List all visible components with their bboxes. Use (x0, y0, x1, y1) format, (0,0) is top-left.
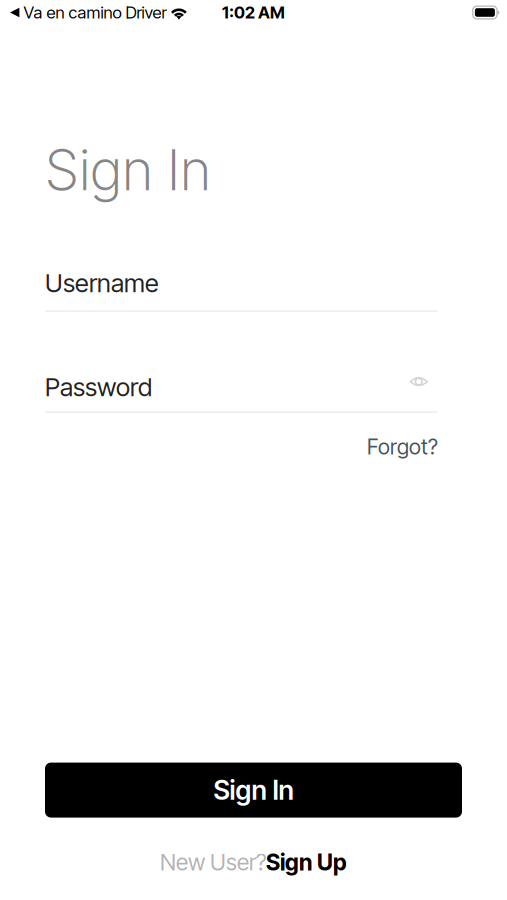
staticText: New User? (160, 849, 266, 876)
button[interactable]: Password (45, 372, 152, 402)
staticText: Username (45, 268, 159, 298)
button[interactable]: New User? (160, 849, 347, 876)
staticText: Forgot? (367, 434, 438, 460)
staticText: 1:02 AM (222, 2, 285, 23)
staticText: Sign In (45, 136, 211, 204)
button[interactable]: Sign In (45, 763, 462, 818)
button[interactable]: Username (45, 268, 159, 298)
button[interactable]: Forgot? (367, 434, 438, 460)
staticText: Sign Up (266, 849, 347, 876)
staticText: Va en camino Driver (19, 2, 166, 23)
button[interactable]: Show password (397, 376, 428, 399)
staticText: Sign In (213, 774, 293, 806)
staticText: Password (45, 372, 152, 402)
